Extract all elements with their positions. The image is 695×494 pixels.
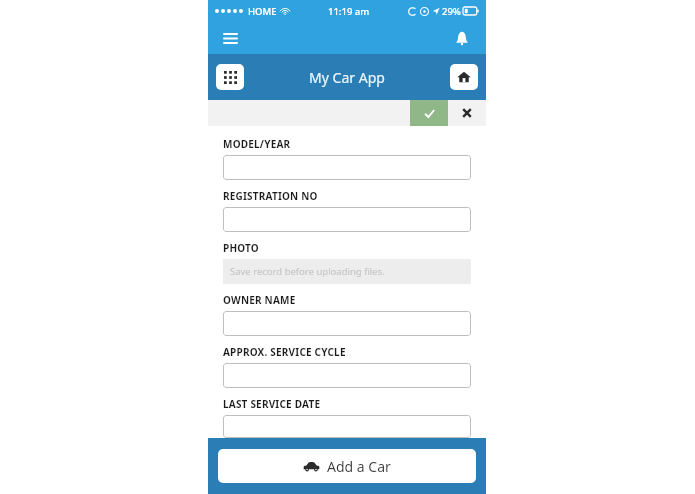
staticText: 11:19 am xyxy=(328,5,370,18)
staticText: Save record before uploading files. xyxy=(230,265,385,278)
button[interactable]: Save record before uploading files. xyxy=(223,259,471,284)
button[interactable] xyxy=(223,311,471,336)
staticText: My Car App xyxy=(309,68,385,87)
button[interactable] xyxy=(223,155,471,180)
staticText: Add a Car xyxy=(327,457,391,476)
button[interactable]: Notifications xyxy=(448,24,476,52)
button[interactable]: Add a Car xyxy=(218,449,476,483)
button[interactable] xyxy=(223,363,471,388)
button[interactable]: Save xyxy=(410,100,448,126)
staticText: REGISTRATION NO xyxy=(223,189,318,203)
button[interactable] xyxy=(223,207,471,232)
staticText: OWNER NAME xyxy=(223,293,296,307)
staticText: HOME xyxy=(248,5,277,18)
staticText: 29% xyxy=(442,5,461,18)
button[interactable]: Cancel xyxy=(448,100,486,126)
staticText: MODEL/YEAR xyxy=(223,137,291,151)
staticText: LAST SERVICE DATE xyxy=(223,397,321,411)
button[interactable] xyxy=(223,415,471,438)
staticText: APPROX. SERVICE CYCLE xyxy=(223,345,346,359)
button[interactable]: Apps grid xyxy=(216,64,244,90)
button[interactable]: Menu xyxy=(216,24,244,52)
staticText: PHOTO xyxy=(223,241,259,255)
button[interactable]: Home xyxy=(450,64,478,90)
